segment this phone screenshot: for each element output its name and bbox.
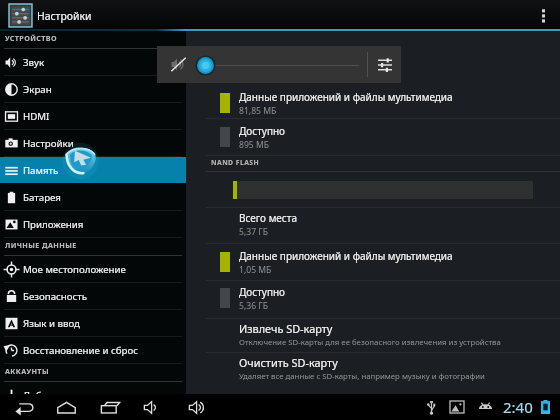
staticText: Удаляет все данные с SD-карты, например …: [239, 371, 485, 382]
staticText: Добавить аккаунт: [23, 389, 107, 402]
staticText: ЛИЧНЫЕ ДАННЫЕ: [5, 240, 77, 250]
button[interactable]: Home: [49, 394, 83, 420]
button[interactable]: Настройки: [0, 130, 186, 156]
staticText: Извлечь SD-карту: [239, 321, 333, 336]
button[interactable]: Volume down: [136, 394, 170, 420]
button[interactable]: Back: [7, 394, 41, 420]
staticText: Всего места: [239, 211, 297, 225]
button[interactable]: Мое местоположение: [0, 256, 186, 282]
staticText: 2:40: [503, 397, 533, 417]
staticText: Восстановление и сброс: [23, 344, 138, 357]
staticText: Очистить SD-карту: [239, 355, 338, 370]
staticText: Язык и ввод: [23, 317, 80, 330]
button[interactable]: Безопасность: [0, 283, 186, 309]
staticText: 5,36 ГБ: [239, 300, 268, 312]
staticText: УСТРОЙСТВО: [5, 33, 58, 43]
staticText: 895 МБ: [239, 139, 270, 151]
button[interactable]: Mute: [171, 57, 186, 72]
staticText: 5,37 ГБ: [239, 226, 268, 238]
staticText: Безопасность: [23, 290, 88, 303]
staticText: Данные приложений и файлы мультимедиа: [239, 249, 453, 263]
button[interactable]: Восстановление и сброс: [0, 337, 186, 363]
button[interactable]: Память: [0, 157, 186, 183]
staticText: АККАУНТЫ: [5, 366, 49, 376]
button[interactable]: Звук: [0, 49, 186, 75]
button[interactable]: Язык и ввод: [0, 310, 186, 336]
staticText: Доступно: [239, 124, 286, 138]
staticText: Доступно: [239, 285, 286, 299]
button[interactable]: Всего места: [186, 209, 560, 239]
button[interactable]: Извлечь SD-карту: [186, 319, 560, 349]
button[interactable]: Данные приложений и файлы мультимедиа: [186, 88, 560, 118]
staticText: Данные приложений и файлы мультимедиа: [239, 90, 453, 104]
button[interactable]: Sound settings: [368, 46, 401, 83]
staticText: Батарея: [23, 191, 61, 204]
staticText: 1,05 МБ: [239, 264, 272, 276]
button[interactable]: Доступно: [186, 122, 560, 152]
button[interactable]: Экран: [0, 76, 186, 102]
button[interactable]: Доступно: [186, 283, 560, 313]
button[interactable]: More options: [527, 0, 560, 31]
button[interactable]: Батарея: [0, 184, 186, 210]
button[interactable]: Очистить SD-карту: [186, 353, 560, 383]
button[interactable]: Recents: [93, 394, 127, 420]
button[interactable]: HDMI: [0, 103, 186, 129]
staticText: HDMI: [23, 110, 50, 123]
staticText: Звук: [23, 56, 45, 69]
button[interactable]: Volume up: [181, 394, 215, 420]
staticText: Память: [23, 164, 59, 177]
staticText: 81,85 МБ: [239, 105, 277, 117]
staticText: Приложения: [23, 218, 84, 231]
staticText: Мое местоположение: [23, 263, 126, 276]
button[interactable]: Приложения: [0, 211, 186, 237]
button[interactable]: Данные приложений и файлы мультимедиа: [186, 247, 560, 277]
staticText: Настройки: [37, 9, 92, 23]
button[interactable]: Добавить аккаунт: [0, 382, 186, 408]
staticText: Отключение SD-карты для ее безопасного и…: [239, 337, 501, 348]
staticText: NAND FLASH: [211, 158, 260, 167]
staticText: Экран: [23, 83, 52, 96]
staticText: Настройки: [23, 137, 74, 150]
